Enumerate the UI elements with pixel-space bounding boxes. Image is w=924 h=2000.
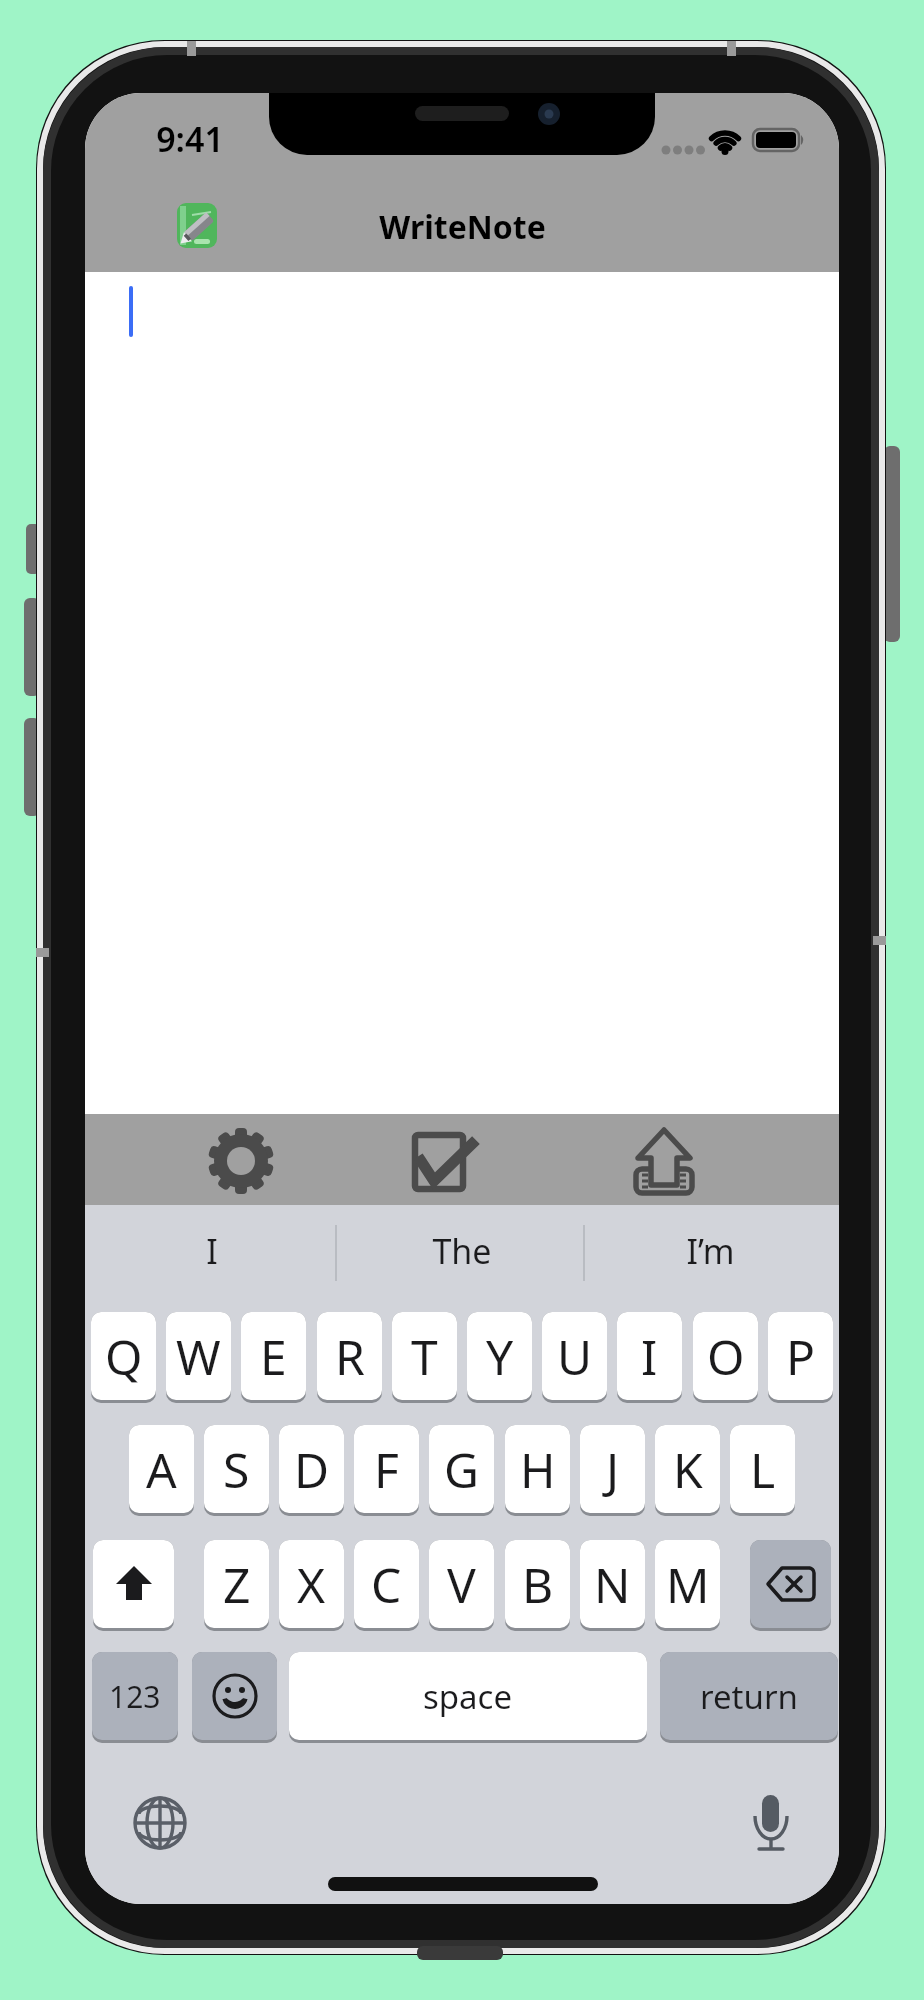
button[interactable]: 123: [92, 1652, 178, 1740]
staticText: M: [666, 1552, 710, 1617]
staticText: return: [700, 1674, 798, 1719]
staticText: D: [294, 1437, 330, 1502]
staticText: E: [260, 1324, 287, 1389]
button[interactable]: S: [204, 1425, 269, 1513]
button[interactable]: A: [129, 1425, 194, 1513]
button[interactable]: I: [617, 1312, 682, 1400]
button[interactable]: T: [392, 1312, 457, 1400]
staticText: L: [750, 1437, 776, 1502]
staticText: V: [447, 1552, 476, 1617]
button[interactable]: M: [655, 1540, 720, 1628]
staticText: space: [423, 1674, 513, 1719]
button[interactable]: I: [97, 1216, 327, 1286]
staticText: G: [444, 1437, 479, 1502]
staticText: I: [206, 1228, 218, 1274]
button[interactable]: J: [580, 1425, 645, 1513]
button[interactable]: [411, 1129, 477, 1193]
staticText: 123: [109, 1676, 161, 1717]
button[interactable]: V: [429, 1540, 494, 1628]
button[interactable]: [632, 1123, 696, 1195]
button[interactable]: [93, 1540, 174, 1628]
staticText: Z: [223, 1552, 251, 1617]
staticText: N: [594, 1552, 631, 1617]
staticText: C: [371, 1552, 402, 1617]
staticText: The: [432, 1228, 492, 1274]
staticText: Q: [105, 1324, 143, 1389]
button[interactable]: return: [660, 1652, 838, 1740]
staticText: W: [176, 1324, 221, 1389]
staticText: K: [673, 1437, 703, 1502]
staticText: P: [786, 1324, 816, 1389]
button[interactable]: [192, 1652, 277, 1740]
button[interactable]: D: [279, 1425, 344, 1513]
button[interactable]: W: [166, 1312, 231, 1400]
staticText: S: [223, 1437, 250, 1502]
button[interactable]: H: [505, 1425, 570, 1513]
button[interactable]: L: [730, 1425, 795, 1513]
staticText: WriteNote: [379, 205, 546, 249]
button[interactable]: G: [429, 1425, 494, 1513]
staticText: H: [520, 1437, 556, 1502]
button[interactable]: I’m: [595, 1216, 825, 1286]
button[interactable]: U: [542, 1312, 607, 1400]
button[interactable]: E: [241, 1312, 306, 1400]
staticText: A: [146, 1437, 177, 1502]
button[interactable]: Q: [91, 1312, 156, 1400]
button[interactable]: Z: [204, 1540, 269, 1628]
button[interactable]: R: [317, 1312, 382, 1400]
button[interactable]: The: [347, 1216, 577, 1286]
button[interactable]: [207, 1127, 275, 1195]
button[interactable]: space: [289, 1652, 647, 1740]
button[interactable]: [748, 1793, 794, 1869]
staticText: J: [606, 1437, 620, 1502]
staticText: Y: [486, 1324, 514, 1389]
button[interactable]: Y: [467, 1312, 532, 1400]
button[interactable]: C: [354, 1540, 419, 1628]
staticText: O: [707, 1324, 745, 1389]
staticText: R: [335, 1324, 365, 1389]
staticText: B: [522, 1552, 554, 1617]
staticText: I: [641, 1324, 658, 1389]
button[interactable]: F: [354, 1425, 419, 1513]
staticText: I’m: [686, 1228, 735, 1274]
button[interactable]: [132, 1795, 188, 1851]
button[interactable]: P: [768, 1312, 833, 1400]
button[interactable]: X: [279, 1540, 344, 1628]
button[interactable]: N: [580, 1540, 645, 1628]
staticText: X: [297, 1552, 326, 1617]
staticText: T: [411, 1324, 438, 1389]
button[interactable]: [750, 1540, 831, 1628]
staticText: U: [557, 1324, 593, 1389]
button[interactable]: O: [693, 1312, 758, 1400]
button[interactable]: K: [655, 1425, 720, 1513]
button[interactable]: B: [505, 1540, 570, 1628]
staticText: 9:41: [156, 116, 224, 162]
staticText: F: [374, 1437, 399, 1502]
